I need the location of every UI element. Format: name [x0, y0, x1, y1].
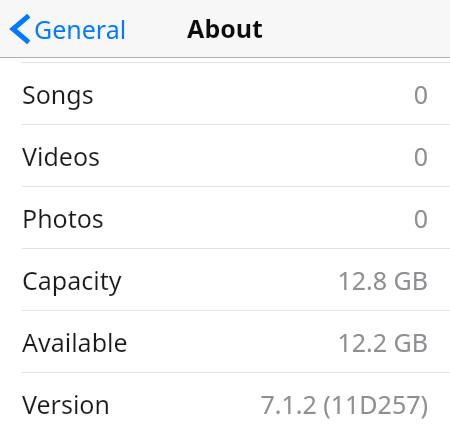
staticText: Photos: [22, 201, 104, 235]
staticText: 12.8 GB: [337, 263, 428, 297]
button[interactable]: Capacity: [0, 249, 450, 310]
staticText: About: [187, 11, 263, 45]
staticText: 0: [413, 201, 428, 235]
button[interactable]: Available: [0, 311, 450, 372]
staticText: General: [34, 12, 127, 46]
staticText: 12.2 GB: [337, 325, 428, 359]
staticText: Songs: [22, 77, 94, 111]
staticText: Videos: [22, 139, 101, 173]
staticText: 7.1.2 (11D257): [260, 387, 428, 421]
staticText: Available: [22, 325, 128, 359]
button[interactable]: Back to General: [0, 0, 137, 58]
staticText: Capacity: [22, 263, 122, 297]
button[interactable]: Videos: [0, 125, 450, 186]
button[interactable]: Songs: [0, 63, 450, 124]
staticText: 0: [413, 77, 428, 111]
staticText: Version: [22, 387, 110, 421]
button[interactable]: Photos: [0, 187, 450, 248]
button[interactable]: Version: [0, 373, 450, 434]
staticText: 0: [413, 139, 428, 173]
